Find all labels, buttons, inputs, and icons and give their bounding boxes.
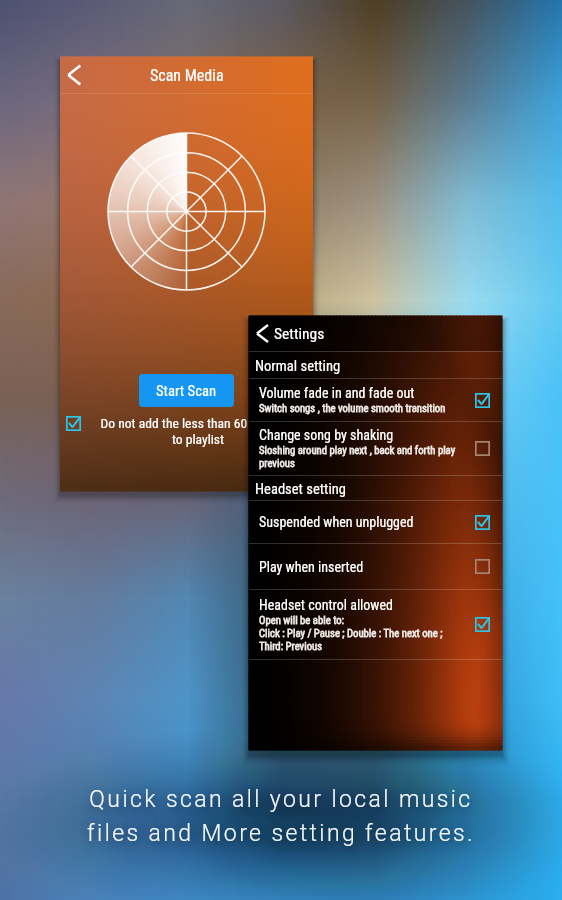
button[interactable]: Volume fade in and fade out <box>249 379 502 421</box>
staticText: Settings <box>274 325 325 343</box>
staticText: Headset setting <box>255 480 347 497</box>
staticText: Normal setting <box>255 357 341 374</box>
other: Back <box>249 321 274 346</box>
staticText: Quick scan all your local music files an… <box>0 786 562 847</box>
staticText: Switch songs , the volume smooth transit… <box>259 402 446 415</box>
staticText: Start Scan <box>156 382 217 399</box>
staticText: Scan Media <box>150 66 224 85</box>
staticText: Sloshing around play next , back and for… <box>259 444 456 470</box>
staticText: Change song by shaking <box>259 427 394 443</box>
staticText: Open will be able to: Click : Play / Pau… <box>259 614 443 653</box>
button[interactable]: Headset control allowed <box>249 590 502 659</box>
button[interactable]: Back <box>60 58 94 92</box>
staticText: Play when inserted <box>259 559 364 575</box>
button[interactable]: Suspended when unplugged <box>249 501 502 543</box>
button[interactable]: Play when inserted <box>249 544 502 589</box>
button[interactable]: Start Scan <box>139 374 234 407</box>
button[interactable]: Change song by shaking <box>249 422 502 475</box>
staticText: Volume fade in and fade out <box>259 385 415 401</box>
staticText: Suspended when unplugged <box>259 514 414 530</box>
button[interactable]: Back <box>249 321 325 346</box>
button[interactable]: Do not add the less than 60 seconds to p… <box>66 415 309 448</box>
staticText: Headset control allowed <box>259 597 393 613</box>
staticText: Do not add the less than 60 seconds to p… <box>87 415 309 448</box>
